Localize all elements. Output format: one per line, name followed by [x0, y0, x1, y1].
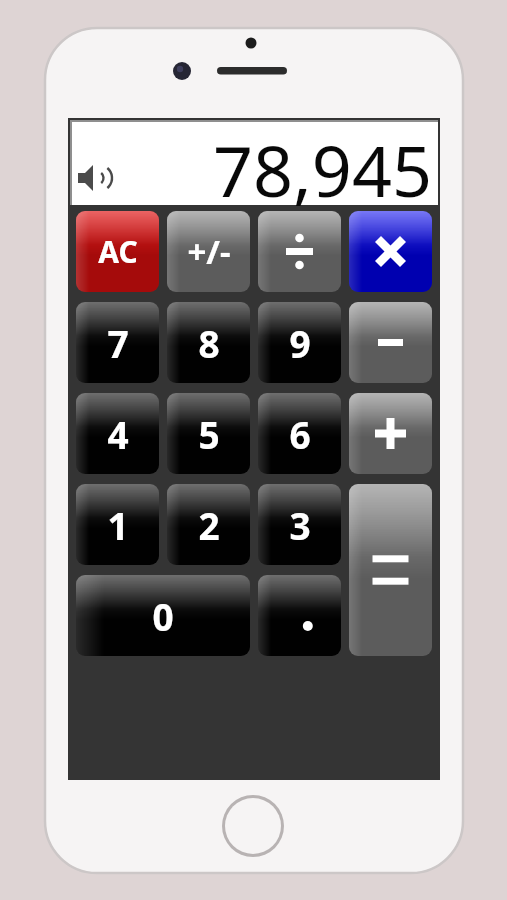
button[interactable]: 5: [167, 393, 250, 474]
button[interactable]: All clear: [76, 211, 159, 292]
button[interactable]: Decimal point: [258, 575, 341, 656]
button[interactable]: Multiply: [349, 211, 432, 292]
staticText: 3: [289, 500, 311, 550]
staticText: 4: [107, 409, 129, 459]
staticText: AC: [98, 231, 138, 272]
button[interactable]: 2: [167, 484, 250, 565]
staticText: 6: [289, 409, 311, 459]
button[interactable]: Divide: [258, 211, 341, 292]
staticText: 0: [152, 591, 174, 641]
button[interactable]: 8: [167, 302, 250, 383]
button[interactable]: 4: [76, 393, 159, 474]
staticText: 5: [198, 409, 220, 459]
staticText: 2: [198, 500, 220, 550]
button[interactable]: 7: [76, 302, 159, 383]
button[interactable]: 9: [258, 302, 341, 383]
button[interactable]: Result display 78,945: [70, 120, 438, 205]
button[interactable]: Toggle sign: [167, 211, 250, 292]
staticText: +/-: [187, 229, 231, 274]
button[interactable]: Minus: [349, 302, 432, 383]
staticText: 8: [198, 318, 220, 368]
button[interactable]: Plus: [349, 393, 432, 474]
button[interactable]: 6: [258, 393, 341, 474]
button[interactable]: Equals: [349, 484, 432, 656]
button[interactable]: 0: [76, 575, 250, 656]
staticText: 7: [107, 318, 129, 368]
button[interactable]: 3: [258, 484, 341, 565]
button[interactable]: 1: [76, 484, 159, 565]
staticText: 1: [107, 500, 129, 550]
staticText: 9: [289, 318, 311, 368]
staticText: 78,945: [213, 122, 432, 207]
